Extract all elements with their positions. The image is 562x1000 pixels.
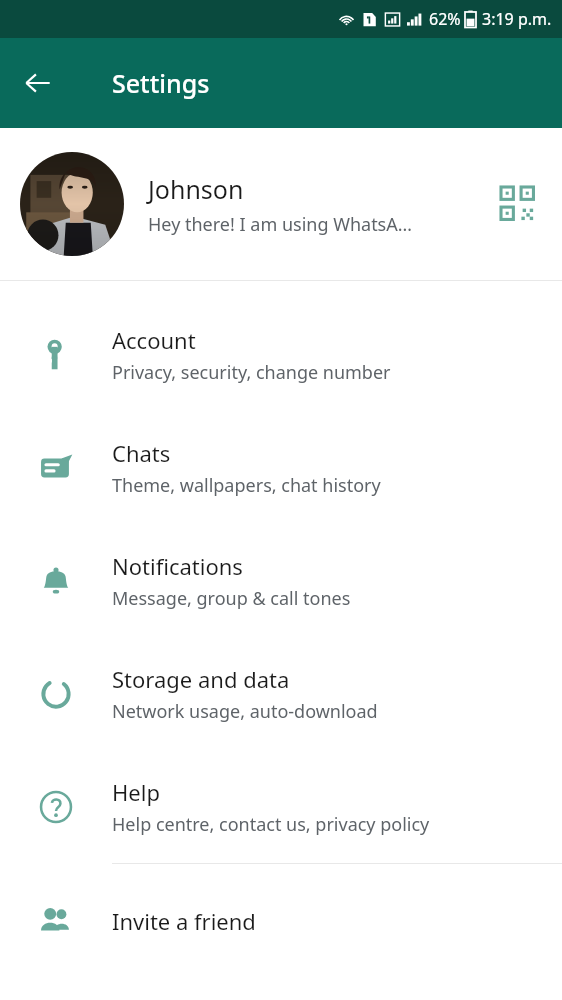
staticText: 3:19 p.m. [482, 8, 552, 30]
staticText: 62% [429, 8, 461, 30]
staticText: Help [112, 777, 160, 807]
button[interactable]: Notifications [0, 524, 562, 637]
button[interactable]: Back [10, 55, 66, 111]
button[interactable]: QR code [494, 180, 542, 228]
staticText: Privacy, security, change number [112, 360, 391, 385]
staticText: Theme, wallpapers, chat history [112, 473, 381, 498]
button[interactable]: Help [0, 750, 562, 863]
button[interactable]: Account [0, 298, 562, 411]
staticText: Message, group & call tones [112, 586, 351, 611]
staticText: Settings [112, 66, 210, 100]
staticText: Johnson [148, 172, 244, 206]
staticText: Account [112, 325, 196, 355]
staticText: Network usage, auto-download [112, 699, 378, 724]
button[interactable]: Johnson [0, 128, 562, 280]
staticText: Chats [112, 438, 171, 468]
button[interactable]: Storage and data [0, 637, 562, 750]
staticText: Hey there! I am using WhatsA… [148, 212, 412, 237]
staticText: Notifications [112, 551, 243, 581]
button[interactable]: Chats [0, 411, 562, 524]
staticText: Help centre, contact us, privacy policy [112, 812, 430, 837]
staticText: Storage and data [112, 664, 290, 694]
button[interactable]: Invite a friend [0, 864, 562, 977]
staticText: Invite a friend [112, 906, 256, 936]
